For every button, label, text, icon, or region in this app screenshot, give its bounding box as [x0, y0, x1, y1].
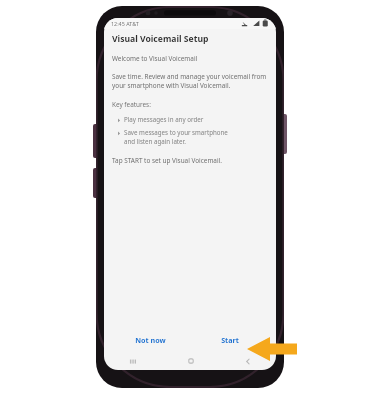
- staticText: Key features:: [112, 100, 151, 109]
- staticText: Tap START to set up Visual Voicemail.: [112, 156, 222, 165]
- staticText: Welcome to Visual Voicemail: [112, 54, 198, 63]
- staticText: 12:45 AT&T: [111, 20, 139, 27]
- other: Pointer arrow highlighting Start: [247, 334, 297, 364]
- button[interactable]: Home: [162, 354, 219, 368]
- button[interactable]: Start: [190, 330, 270, 350]
- button[interactable]: Not now: [110, 330, 190, 350]
- button[interactable]: Back: [219, 354, 276, 368]
- staticText: Save time. Review and manage your voicem…: [112, 72, 268, 90]
- staticText: Play messages in any order: [124, 115, 204, 123]
- button[interactable]: Recent apps: [104, 354, 162, 368]
- staticText: Visual Voicemail Setup: [112, 33, 209, 45]
- staticText: Not now: [135, 335, 166, 345]
- staticText: Save messages to your smartphone and lis…: [124, 128, 228, 146]
- staticText: Start: [221, 335, 239, 345]
